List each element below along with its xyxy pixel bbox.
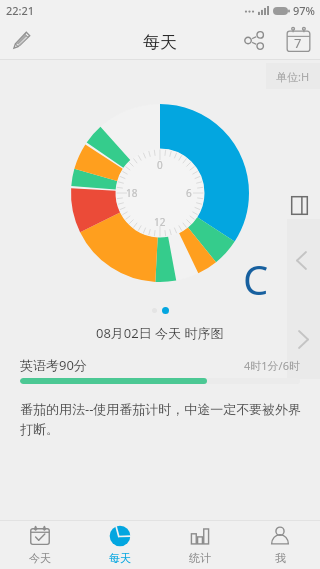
staticText: 每天	[109, 551, 131, 565]
staticText: 7	[294, 34, 302, 52]
button[interactable]: Calendar	[278, 20, 318, 60]
staticText: 今天	[29, 551, 51, 565]
staticText: C	[243, 252, 269, 306]
button[interactable]: 统计	[160, 521, 240, 569]
staticText: 英语考90分	[20, 356, 87, 374]
button[interactable]: Edit	[0, 20, 44, 60]
button[interactable]: Back	[296, 251, 307, 270]
button[interactable]: Split screen	[291, 196, 308, 215]
button[interactable]: Share	[234, 20, 274, 60]
staticText: 08月02日 今天 时序图	[96, 324, 224, 342]
staticText: 单位:H	[276, 69, 310, 84]
staticText: 22:21	[6, 3, 35, 18]
staticText: 番茄的用法--使用番茄计时，中途一定不要被外界打断。	[20, 400, 302, 438]
staticText: 4时1分/6时	[244, 358, 300, 373]
staticText: 每天	[143, 32, 177, 53]
staticText: 我	[275, 551, 286, 565]
staticText: 0	[157, 158, 163, 172]
button[interactable]: 每天	[80, 521, 160, 569]
staticText: 统计	[189, 551, 211, 565]
staticText: 12	[154, 215, 166, 229]
button[interactable]: 今天	[0, 521, 80, 569]
button[interactable]: 我	[240, 521, 320, 569]
button[interactable]: 单位:H	[266, 63, 320, 89]
button[interactable]: Forward	[298, 330, 309, 349]
staticText: 18	[126, 186, 138, 200]
staticText: 6	[186, 186, 192, 200]
staticText: 97%	[293, 3, 315, 18]
